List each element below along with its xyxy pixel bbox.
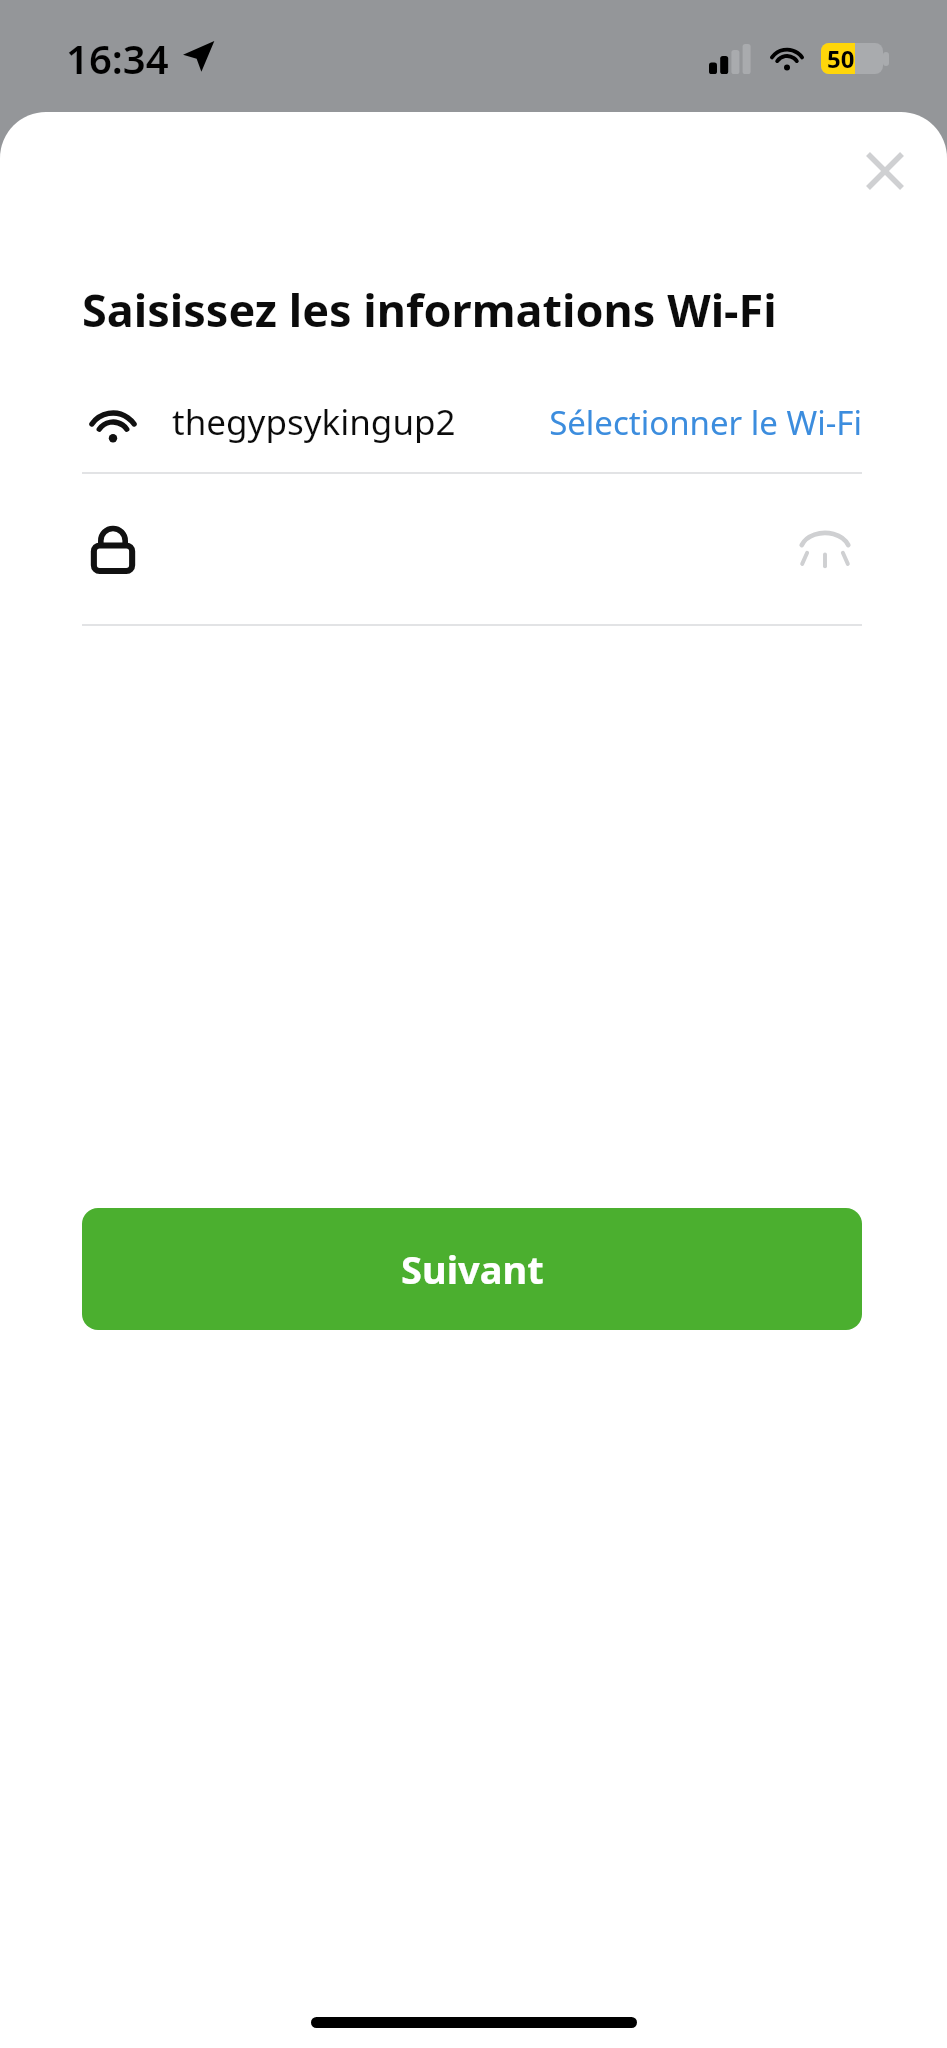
button[interactable]: thegypsykingup2 [82, 372, 862, 472]
staticText: Suivant [401, 1243, 544, 1295]
staticText: Saisissez les informations Wi-Fi [82, 279, 777, 340]
button[interactable]: Afficher le mot de passe [788, 512, 862, 586]
button[interactable]: Suivant [82, 1208, 862, 1330]
button[interactable]: Afficher le mot de passe [82, 474, 862, 624]
staticText: Sélectionner le Wi-Fi [549, 400, 862, 445]
staticText: 16:34 [66, 31, 169, 85]
staticText: 50 [827, 42, 855, 73]
button[interactable]: Fermer [837, 123, 933, 219]
staticText: thegypsykingup2 [172, 398, 456, 446]
